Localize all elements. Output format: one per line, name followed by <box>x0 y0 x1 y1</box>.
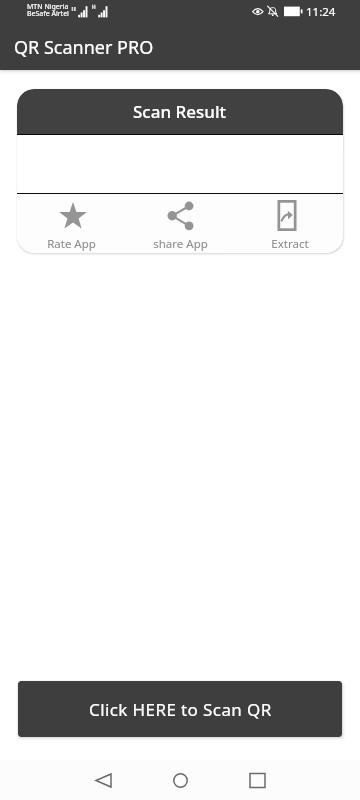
button[interactable]: Extract <box>234 194 343 253</box>
button[interactable]: share App <box>126 194 235 253</box>
button[interactable]: Back <box>79 760 127 800</box>
button[interactable]: Click HERE to Scan QR <box>18 681 342 737</box>
staticText: MTN Nigeria <box>27 2 69 12</box>
staticText: Scan Result <box>133 100 227 123</box>
button[interactable]: Home <box>156 760 204 800</box>
button[interactable]: Recent apps <box>233 760 281 800</box>
staticText: Extract <box>271 236 309 252</box>
staticText: BeSafe Airtel <box>27 9 69 19</box>
staticText: 11:24 <box>306 4 336 20</box>
staticText: Rate App <box>47 236 96 252</box>
button[interactable]: Rate App <box>17 194 126 253</box>
staticText: Click HERE to Scan QR <box>89 698 272 721</box>
staticText: share App <box>153 236 208 252</box>
staticText: QR Scanner PRO <box>14 35 154 60</box>
